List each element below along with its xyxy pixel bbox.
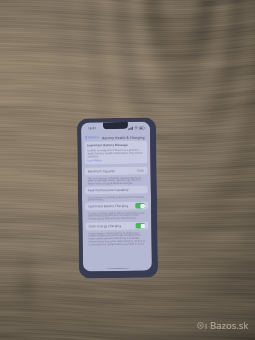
- button[interactable]: Peak Performance Capability: [85, 186, 148, 194]
- staticText: ı: [205, 320, 208, 331]
- staticText: Important Battery Message: [87, 143, 128, 147]
- staticText: Learn More: [87, 158, 102, 162]
- staticText: Peak Performance Capability: [88, 188, 129, 192]
- staticText: In your region, iPhone will try to reduc…: [88, 231, 146, 246]
- staticText: Your battery is currently supporting nor…: [88, 195, 145, 201]
- staticText: Battery Health & Charging: [102, 135, 145, 139]
- button[interactable]: Battery: [84, 133, 100, 141]
- staticText: Clean Energy Charging: [88, 224, 121, 228]
- button[interactable]: Maximum Capacity: [85, 167, 148, 175]
- staticText: Maximum Capacity: [88, 169, 115, 173]
- staticText: 100%: [137, 169, 145, 173]
- staticText: This is a measure of battery capacity re…: [88, 176, 145, 185]
- staticText: To reduce battery aging, iPhone learns f…: [88, 211, 145, 220]
- button[interactable]: Clean Energy Charging: [85, 222, 148, 230]
- button[interactable]: Optimized Battery Charging: [85, 202, 148, 210]
- staticText: Unable to verify this iPhone has a genui…: [87, 148, 144, 157]
- button[interactable]: Learn More: [87, 158, 102, 162]
- staticText: Battery: [88, 135, 99, 139]
- staticText: Bazos.sk: [210, 319, 249, 332]
- staticText: Optimized Battery Charging: [88, 204, 128, 208]
- staticText: 16:41: [88, 126, 96, 130]
